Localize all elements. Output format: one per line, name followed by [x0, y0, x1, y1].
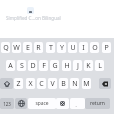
- staticText: space: [35, 100, 49, 107]
- staticText: I: [82, 43, 85, 53]
- button[interactable]: S: [17, 60, 26, 71]
- button[interactable]: E: [23, 42, 32, 53]
- button[interactable]: Z: [14, 78, 23, 89]
- button[interactable]: F: [39, 60, 48, 71]
- staticText: J: [77, 61, 79, 71]
- staticText: D: [30, 61, 36, 71]
- staticText: S: [20, 61, 24, 71]
- button[interactable]: P: [102, 42, 111, 53]
- button[interactable]: Switch keyboard: [15, 98, 27, 109]
- staticText: W: [13, 43, 20, 53]
- button[interactable]: space: [28, 98, 56, 109]
- button[interactable]: L: [95, 60, 104, 71]
- staticText: B: [61, 79, 66, 89]
- button[interactable]: return: [85, 98, 110, 109]
- button[interactable]: C: [37, 78, 46, 89]
- staticText: C: [39, 79, 44, 89]
- staticText: Simplified C...on Bilingual: [6, 15, 61, 21]
- staticText: U: [70, 43, 76, 53]
- staticText: Q: [3, 43, 9, 53]
- button[interactable]: Y: [57, 42, 66, 53]
- staticText: Z: [16, 79, 21, 89]
- staticText: H: [64, 61, 70, 71]
- staticText: 、: [75, 101, 80, 107]
- staticText: N: [72, 79, 78, 89]
- button[interactable]: G: [50, 60, 59, 71]
- button[interactable]: 123: [0, 98, 14, 109]
- staticText: G: [52, 61, 58, 71]
- button[interactable]: K: [84, 60, 93, 71]
- staticText: P: [104, 43, 109, 53]
- button[interactable]: 、: [70, 98, 85, 109]
- button[interactable]: Emoji: [56, 98, 69, 109]
- staticText: O: [92, 43, 98, 53]
- staticText: 123: [3, 101, 11, 107]
- staticText: T: [49, 43, 53, 53]
- button[interactable]: R: [34, 42, 43, 53]
- staticText: L: [98, 61, 102, 71]
- staticText: Y: [60, 43, 64, 53]
- staticText: V: [50, 79, 55, 89]
- staticText: A: [8, 61, 13, 71]
- staticText: X: [28, 79, 33, 89]
- staticText: R: [36, 43, 41, 53]
- button[interactable]: V: [48, 78, 57, 89]
- staticText: return: [90, 100, 105, 107]
- button[interactable]: Backspace: [99, 78, 111, 89]
- button[interactable]: M: [82, 78, 91, 89]
- button[interactable]: W: [12, 42, 21, 53]
- button[interactable]: Q: [1, 42, 10, 53]
- button[interactable]: U: [68, 42, 77, 53]
- staticText: M: [83, 79, 90, 89]
- staticText: E: [26, 43, 30, 53]
- staticText: K: [86, 61, 91, 71]
- button[interactable]: N: [70, 78, 79, 89]
- button[interactable]: J: [73, 60, 82, 71]
- staticText: F: [42, 61, 46, 71]
- button[interactable]: B: [59, 78, 68, 89]
- button[interactable]: D: [28, 60, 37, 71]
- button[interactable]: H: [62, 60, 71, 71]
- button[interactable]: T: [46, 42, 55, 53]
- button[interactable]: X: [26, 78, 35, 89]
- button[interactable]: A: [6, 60, 15, 71]
- button[interactable]: Shift: [0, 78, 13, 89]
- button[interactable]: I: [79, 42, 88, 53]
- button[interactable]: O: [90, 42, 99, 53]
